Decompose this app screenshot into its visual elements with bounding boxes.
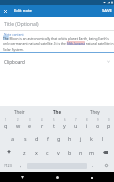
button[interactable]: Home	[53, 173, 62, 182]
button[interactable]: b	[64, 145, 75, 159]
staticText: p	[107, 122, 111, 129]
button[interactable]: The	[38, 106, 76, 117]
button[interactable]: Backspace	[97, 145, 114, 159]
staticText: The Moon is an astronomically that orbit…	[3, 36, 109, 40]
button[interactable]: SAVE	[99, 5, 114, 17]
staticText: The	[53, 109, 62, 115]
staticText: a	[11, 135, 15, 142]
button[interactable]: m	[86, 145, 97, 159]
button[interactable]: 5	[48, 117, 59, 131]
button[interactable]: Back	[18, 173, 27, 182]
button[interactable]: d	[31, 131, 42, 145]
staticText: z	[23, 149, 26, 156]
staticText: 2	[17, 118, 19, 122]
staticText: They	[90, 109, 100, 115]
staticText: w	[16, 122, 21, 129]
staticText: SAVE	[102, 8, 112, 14]
button[interactable]: Clipboard	[0, 55, 114, 68]
button[interactable]: j	[75, 131, 86, 145]
staticText: h	[68, 135, 72, 142]
button[interactable]: z	[18, 145, 30, 159]
staticText: o	[96, 122, 100, 129]
staticText: .	[92, 162, 94, 169]
staticText: 5	[53, 118, 55, 122]
staticText: Edit note	[14, 8, 32, 14]
button[interactable]: n	[75, 145, 86, 159]
staticText: g	[57, 135, 61, 142]
staticText: Clipboard	[4, 59, 25, 65]
button[interactable]: 2	[12, 117, 24, 131]
staticText: Title (Optional)	[4, 21, 39, 28]
staticText: Solar System.	[3, 47, 24, 51]
staticText: n	[79, 149, 83, 156]
staticText: 4	[41, 118, 43, 122]
staticText: t	[53, 122, 55, 129]
staticText: x	[35, 149, 38, 156]
button[interactable]: l	[97, 131, 108, 145]
staticText: v	[57, 149, 60, 156]
staticText: m	[89, 149, 95, 156]
staticText: j	[80, 135, 82, 142]
button[interactable]: g	[53, 131, 64, 145]
staticText: 0	[108, 118, 110, 122]
button[interactable]: v	[53, 145, 64, 159]
staticText: e	[28, 122, 32, 129]
button[interactable]: 3	[24, 117, 36, 131]
button[interactable]: 0	[103, 117, 114, 131]
button[interactable]: 7	[70, 117, 81, 131]
staticText: 9	[97, 118, 99, 122]
button[interactable]: 9	[92, 117, 103, 131]
button[interactable]: f	[42, 131, 53, 145]
button[interactable]: s	[19, 131, 31, 145]
button[interactable]: Shift	[0, 145, 18, 159]
button[interactable]: Close	[0, 6, 11, 17]
staticText: 1	[5, 118, 7, 122]
staticText: y	[63, 122, 66, 129]
button[interactable]: Emoji	[98, 159, 114, 172]
button[interactable]: .	[88, 159, 98, 172]
staticText: c	[46, 149, 49, 156]
staticText: 6	[64, 118, 66, 122]
button[interactable]: 8	[81, 117, 92, 131]
staticText: 3	[29, 118, 31, 122]
button[interactable]: 4	[36, 117, 48, 131]
staticText: k	[90, 135, 93, 142]
staticText: r	[41, 122, 44, 129]
staticText: ,	[20, 162, 22, 169]
button[interactable]: x	[30, 145, 42, 159]
staticText: d	[35, 135, 39, 142]
button[interactable]: a	[7, 131, 19, 145]
staticText: q	[4, 122, 8, 129]
button[interactable]: 1	[0, 117, 12, 131]
staticText: b	[68, 149, 72, 156]
button[interactable]: 6	[59, 117, 70, 131]
button[interactable]: Their	[0, 106, 38, 117]
staticText: l	[102, 135, 104, 142]
staticText: f	[47, 135, 49, 142]
staticText: ?123	[4, 163, 12, 168]
staticText: Note content	[4, 33, 24, 37]
button[interactable]: ?123	[0, 159, 16, 172]
button[interactable]: k	[86, 131, 97, 145]
staticText: only permanent natural satellite. It is …	[3, 41, 114, 45]
staticText: s	[24, 135, 27, 142]
staticText: 7	[75, 118, 77, 122]
button[interactable]: ,	[16, 159, 26, 172]
button[interactable]: c	[42, 145, 53, 159]
staticText: u	[74, 122, 78, 129]
staticText: i	[86, 122, 88, 129]
button[interactable]: They	[76, 106, 114, 117]
button[interactable]: h	[64, 131, 75, 145]
button[interactable]: Recents	[87, 173, 96, 182]
staticText: 8	[86, 118, 88, 122]
staticText: Their	[14, 109, 25, 115]
